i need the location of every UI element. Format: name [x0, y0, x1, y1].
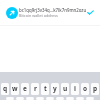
- button[interactable]: l: [86, 97, 94, 100]
- staticText: u: [63, 84, 68, 93]
- staticText: r: [34, 84, 37, 93]
- button[interactable]: r: [31, 83, 39, 95]
- button[interactable]: k: [76, 97, 84, 100]
- button[interactable]: h: [56, 97, 64, 100]
- button[interactable]: o: [81, 83, 89, 95]
- button[interactable]: j: [66, 97, 74, 100]
- button[interactable]: u: [61, 83, 69, 95]
- other: Confirmed: [87, 9, 94, 16]
- staticText: t: [44, 84, 47, 93]
- staticText: bc1qq9rj3v34q...k7lk7n9mn2ozu: [19, 7, 87, 13]
- staticText: Bitcoin wallet address: [19, 13, 58, 18]
- staticText: o: [83, 84, 88, 93]
- staticText: y: [53, 84, 57, 93]
- staticText: i: [74, 84, 76, 93]
- button[interactable]: t: [41, 83, 49, 95]
- button[interactable]: a: [6, 97, 14, 100]
- button[interactable]: i: [71, 83, 79, 95]
- staticText: p: [93, 84, 98, 93]
- button[interactable]: e: [21, 83, 29, 95]
- staticText: w: [12, 84, 18, 93]
- button[interactable]: w: [11, 83, 19, 95]
- staticText: e: [23, 84, 27, 93]
- button[interactable]: f: [36, 97, 44, 100]
- button[interactable]: s: [16, 97, 24, 100]
- button[interactable]: p: [91, 83, 99, 95]
- button[interactable]: bc1qq9rj3v34q...k7lk7n9mn2ozu: [0, 0, 100, 25]
- button[interactable]: d: [26, 97, 34, 100]
- button[interactable]: q: [1, 83, 9, 95]
- button[interactable]: g: [46, 97, 54, 100]
- button[interactable]: y: [51, 83, 59, 95]
- staticText: q: [3, 84, 8, 93]
